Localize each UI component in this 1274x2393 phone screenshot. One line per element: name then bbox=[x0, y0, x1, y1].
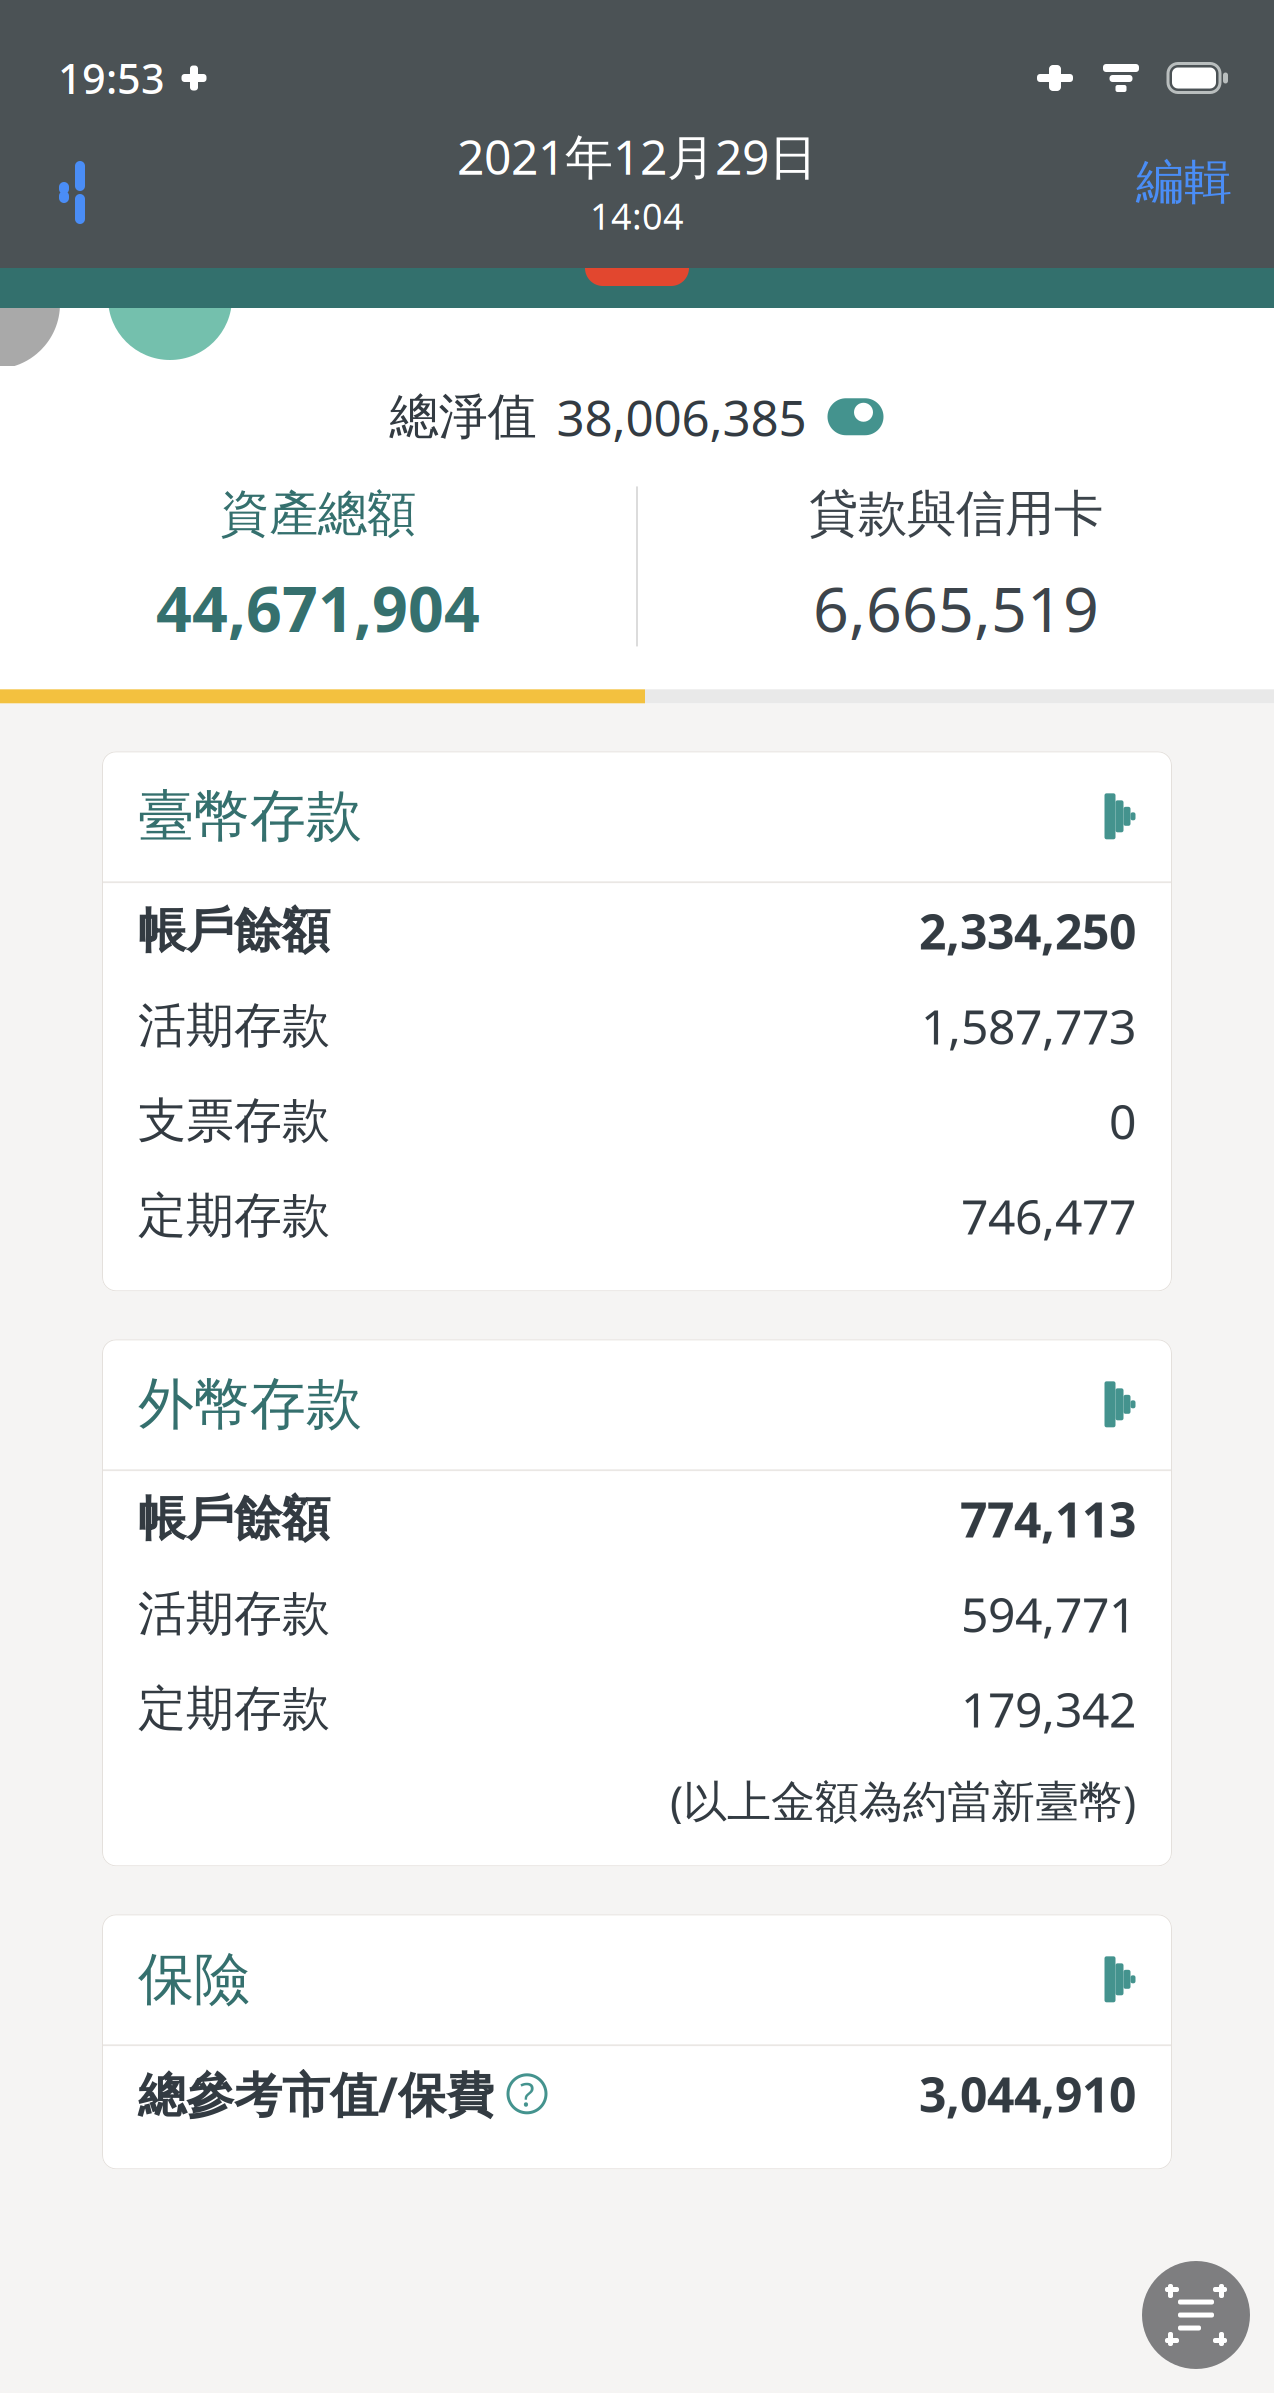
staticText: 6,665,519 bbox=[813, 566, 1099, 649]
staticText: 總淨值 bbox=[389, 386, 536, 447]
staticText: 19:53 bbox=[58, 51, 165, 105]
staticText: 保險 bbox=[138, 1945, 250, 2014]
staticText: 3,044,910 bbox=[919, 2062, 1136, 2126]
staticText: 44,671,904 bbox=[156, 566, 480, 649]
staticText: 38,006,385 bbox=[556, 384, 806, 449]
staticText: 活期存款 bbox=[138, 996, 330, 1055]
staticText: 帳戶餘額 bbox=[138, 901, 330, 960]
button[interactable]: 掃描 bbox=[1142, 2261, 1250, 2369]
button[interactable]: 說明 bbox=[508, 2075, 546, 2113]
staticText: 總參考市值/保費 bbox=[138, 2062, 494, 2126]
staticText: 2,334,250 bbox=[919, 899, 1136, 963]
staticText: 1,587,773 bbox=[921, 994, 1136, 1058]
staticText: 定期存款 bbox=[138, 1679, 330, 1738]
staticText: 資產總額 bbox=[220, 483, 416, 544]
staticText: 貸款與信用卡 bbox=[809, 483, 1103, 544]
staticText: 支票存款 bbox=[138, 1091, 330, 1150]
staticText: (以上金額為約當新臺幣) bbox=[670, 1771, 1136, 1829]
staticText: 外幣存款 bbox=[138, 1370, 362, 1439]
button[interactable]: 返回 bbox=[26, 130, 118, 234]
button[interactable]: 保險 bbox=[102, 1914, 1172, 2044]
staticText: 14:04 bbox=[590, 192, 684, 240]
staticText: 594,771 bbox=[961, 1582, 1136, 1646]
staticText: 746,477 bbox=[961, 1184, 1136, 1248]
button[interactable]: 編輯 bbox=[1120, 130, 1248, 234]
staticText: 定期存款 bbox=[138, 1186, 330, 1245]
button[interactable]: 顯示或隱藏總淨值 bbox=[826, 397, 884, 436]
staticText: 臺幣存款 bbox=[138, 782, 362, 851]
staticText: ? bbox=[520, 2072, 534, 2116]
staticText: 活期存款 bbox=[138, 1584, 330, 1643]
staticText: 編輯 bbox=[1136, 152, 1232, 211]
button[interactable]: 外幣存款 bbox=[102, 1339, 1172, 1469]
button[interactable]: 臺幣存款 bbox=[102, 751, 1172, 881]
staticText: 2021年12月29日 bbox=[457, 124, 817, 188]
staticText: 帳戶餘額 bbox=[138, 1489, 330, 1548]
staticText: 774,113 bbox=[960, 1487, 1136, 1551]
staticText: 0 bbox=[1109, 1089, 1136, 1153]
staticText: 179,342 bbox=[961, 1677, 1136, 1741]
